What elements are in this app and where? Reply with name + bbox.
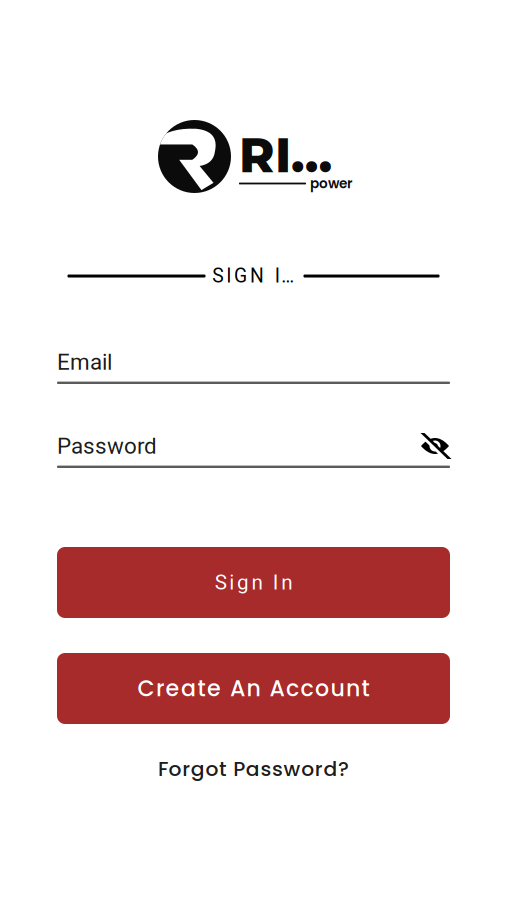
button[interactable]: Create An Account — [57, 653, 450, 724]
staticText: Email — [57, 349, 112, 375]
staticText: power — [310, 174, 352, 193]
staticText: RISE — [239, 126, 349, 184]
button[interactable]: Show password — [420, 433, 450, 459]
button[interactable]: Sign In — [57, 547, 450, 618]
staticText: Forgot Password? — [158, 755, 349, 783]
staticText: SIGN IN — [212, 265, 297, 287]
staticText: Create An Account — [137, 673, 369, 704]
button[interactable]: Forgot Password? — [143, 756, 363, 782]
staticText: Sign In — [215, 570, 292, 595]
staticText: Password — [57, 433, 157, 459]
